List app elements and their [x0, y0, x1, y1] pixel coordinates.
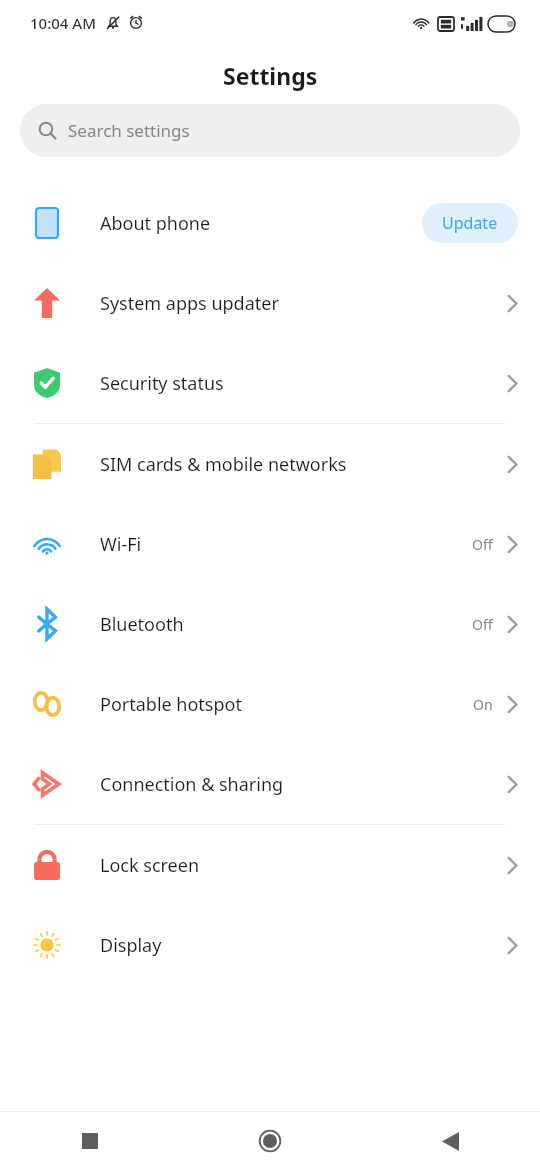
staticText: About phone [100, 211, 422, 236]
staticText: System apps updater [100, 291, 507, 316]
button[interactable]: Back [360, 1112, 540, 1170]
staticText: Search settings [68, 119, 190, 142]
button[interactable]: Home [180, 1112, 360, 1170]
staticText: Off [472, 535, 493, 554]
button[interactable]: About phone [0, 183, 540, 263]
staticText: Update [442, 212, 498, 234]
button[interactable]: Update [422, 203, 518, 243]
button[interactable]: Security status [0, 343, 540, 423]
button[interactable]: Wi-Fi [0, 504, 540, 584]
staticText: Bluetooth [100, 612, 472, 637]
button[interactable]: Recents [0, 1112, 180, 1170]
staticText: 10:04 AM [30, 13, 96, 33]
staticText: Display [100, 933, 507, 958]
staticText: SIM cards & mobile networks [100, 452, 507, 477]
staticText: Off [472, 615, 493, 634]
staticText: Lock screen [100, 853, 507, 878]
staticText: Connection & sharing [100, 772, 507, 797]
button[interactable]: Connection & sharing [0, 744, 540, 824]
staticText: Security status [100, 371, 507, 396]
button[interactable]: System apps updater [0, 263, 540, 343]
staticText: Settings [223, 60, 318, 91]
staticText: Portable hotspot [100, 692, 473, 717]
button[interactable]: Display [0, 905, 540, 985]
button[interactable]: SIM cards & mobile networks [0, 424, 540, 504]
staticText: On [473, 695, 493, 714]
button[interactable]: Lock screen [0, 825, 540, 905]
staticText: Wi-Fi [100, 532, 472, 557]
button[interactable]: Portable hotspot [0, 664, 540, 744]
button[interactable]: Search settings [20, 104, 520, 157]
button[interactable]: Bluetooth [0, 584, 540, 664]
